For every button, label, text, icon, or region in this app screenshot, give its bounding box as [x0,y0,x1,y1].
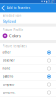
staticText: observer [3,59,15,62]
staticText: Add to Favorites [7,6,30,10]
staticText: compatto [3,83,15,86]
staticText: none [3,67,11,70]
staticText: Stylized [3,19,16,24]
staticText: concentr. [3,91,16,94]
button[interactable]: compatto [0,81,56,89]
staticText: Colors [9,33,21,38]
button[interactable]: none [0,65,56,73]
staticText: Picture Profile [3,28,24,32]
button[interactable]: pastello [0,73,56,81]
staticText: Selected icon [3,14,22,17]
staticText: pastello [3,75,14,78]
button[interactable]: observer [0,57,56,65]
staticText: Picture templates [3,44,27,48]
button[interactable]: other [0,49,56,57]
button[interactable]: Back [0,3,7,13]
button[interactable]: Colors [3,32,53,38]
staticText: 9:41 [48,0,55,3]
button[interactable]: concentr. [0,89,56,97]
staticText: other [3,51,11,54]
